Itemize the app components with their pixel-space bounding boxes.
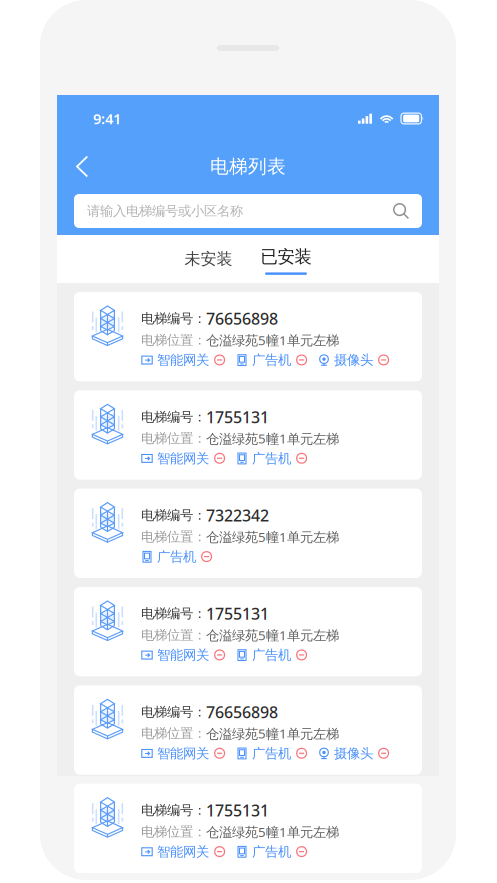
staticText: 电梯位置： [141,725,206,742]
staticText: 仓溢绿苑5幢1单元左梯 [206,626,339,644]
button[interactable]: 广告机 [236,450,307,467]
staticText: 广告机 [252,844,291,860]
staticText: 电梯位置： [141,332,206,348]
staticText: 已安装 [260,246,311,267]
button[interactable]: 智能网关 [141,647,225,663]
staticText: 电梯编号： [141,409,206,425]
staticText: 未安装 [184,249,232,269]
staticText: 电梯位置： [141,529,206,545]
staticText: 电梯位置： [141,430,206,447]
staticText: 智能网关 [157,647,209,663]
button[interactable]: 电梯编号： [74,685,422,775]
button[interactable]: 智能网关 [141,844,225,860]
staticText: 1755131 [206,406,269,427]
staticText: 仓溢绿苑5幢1单元左梯 [206,430,339,447]
staticText: 智能网关 [157,352,209,368]
button[interactable]: 未安装 [170,237,246,281]
button[interactable]: 请输入电梯编号或小区名称 [74,194,422,228]
staticText: 7322342 [206,505,269,526]
staticText: 电梯编号： [141,802,206,818]
staticText: 广告机 [252,450,291,467]
staticText: 电梯编号： [141,704,206,720]
button[interactable]: 智能网关 [141,745,225,762]
staticText: 广告机 [157,549,196,565]
button[interactable]: 广告机 [236,745,307,762]
button[interactable]: 广告机 [236,647,307,663]
button[interactable]: 电梯编号： [74,489,422,578]
staticText: 仓溢绿苑5幢1单元左梯 [206,823,339,841]
staticText: 9:41 [93,109,121,128]
staticText: 电梯编号： [141,605,206,622]
staticText: 广告机 [252,647,291,663]
button[interactable]: Back [67,151,97,181]
staticText: 摄像头 [334,745,373,762]
button[interactable]: 广告机 [236,352,307,368]
button[interactable]: 电梯编号： [74,587,422,676]
staticText: 电梯位置： [141,824,206,840]
staticText: 智能网关 [157,844,209,860]
staticText: 摄像头 [334,352,373,368]
button[interactable]: 智能网关 [141,450,225,467]
staticText: 广告机 [252,352,291,368]
staticText: 1755131 [206,800,269,821]
staticText: 76656898 [206,701,278,722]
button[interactable]: 摄像头 [318,352,389,368]
button[interactable]: 广告机 [141,549,212,565]
button[interactable]: 摄像头 [318,745,389,762]
staticText: 智能网关 [157,450,209,467]
staticText: 仓溢绿苑5幢1单元左梯 [206,528,339,546]
staticText: 电梯编号： [141,310,206,327]
button[interactable]: 已安装 [246,237,325,281]
staticText: 电梯位置： [141,627,206,643]
staticText: 请输入电梯编号或小区名称 [87,203,243,219]
button[interactable]: 电梯编号： [74,292,422,381]
staticText: 仓溢绿苑5幢1单元左梯 [206,725,339,742]
button[interactable]: 广告机 [236,844,307,860]
staticText: 电梯编号： [141,507,206,523]
staticText: 智能网关 [157,745,209,762]
button[interactable]: 电梯编号： [74,784,422,873]
staticText: 仓溢绿苑5幢1单元左梯 [206,331,339,349]
staticText: 广告机 [252,745,291,762]
staticText: 76656898 [206,308,278,329]
staticText: 1755131 [206,603,269,624]
button[interactable]: 电梯编号： [74,390,422,480]
button[interactable]: 智能网关 [141,352,225,368]
staticText: 电梯列表 [210,155,286,178]
